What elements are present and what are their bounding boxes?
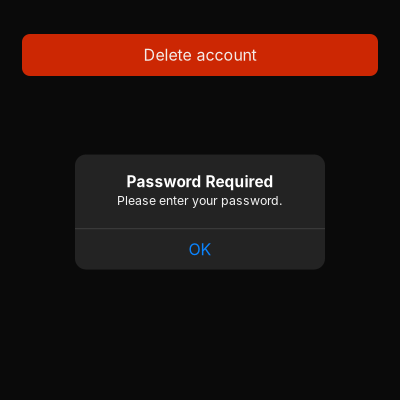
staticText: Delete account [143, 45, 256, 65]
staticText: Please enter your password. [117, 193, 283, 208]
staticText: Password Required [126, 172, 273, 191]
button[interactable]: OK [75, 229, 325, 269]
button[interactable]: Delete account [22, 34, 378, 76]
staticText: OK [188, 240, 211, 259]
